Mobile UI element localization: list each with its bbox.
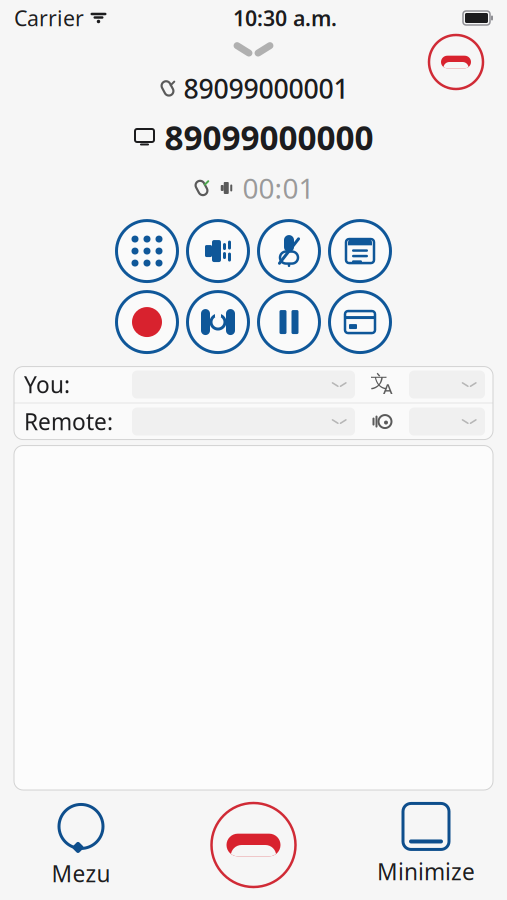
staticText: 10:30 a.m. [233, 4, 337, 32]
staticText: Mezu [51, 858, 110, 888]
staticText: A [383, 379, 393, 398]
button[interactable]: Record [116, 292, 177, 353]
staticText: Minimize [377, 856, 475, 886]
button[interactable]: Notes [329, 221, 390, 282]
button[interactable]: Payment [329, 292, 390, 353]
button[interactable]: Minimize [361, 803, 491, 886]
staticText: 89099000000 [164, 115, 373, 159]
button[interactable]: Speaker [187, 221, 248, 282]
button[interactable]: Mezu [16, 801, 146, 888]
staticText: Carrier [14, 4, 84, 32]
staticText: Remote: [24, 406, 113, 437]
staticText: 00:01 [242, 169, 314, 207]
button[interactable]: Remote language [132, 408, 355, 436]
button[interactable]: Your language options [409, 371, 485, 399]
staticText: You: [24, 369, 70, 400]
staticText: 89099000001 [183, 71, 348, 106]
button[interactable]: Mute [258, 221, 319, 282]
button[interactable]: End call [429, 35, 483, 89]
button[interactable]: End call [211, 803, 295, 887]
button[interactable]: Remote language options [409, 408, 485, 436]
staticText: 文 [370, 371, 387, 392]
button[interactable]: Your language [132, 371, 355, 399]
button[interactable]: Transfer [187, 292, 248, 353]
button[interactable]: Keypad [116, 221, 177, 282]
button[interactable]: Hold [258, 292, 319, 353]
